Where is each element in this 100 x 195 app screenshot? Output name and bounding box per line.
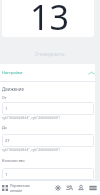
staticText: онлайн bbox=[10, 188, 23, 193]
staticText: 1 bbox=[5, 106, 8, 111]
staticText: Перевозчик bbox=[10, 183, 30, 188]
staticText: rgb("##########", rgb("##########") bbox=[2, 148, 60, 152]
staticText: Количество bbox=[2, 158, 25, 163]
staticText: rgb("##########", rgb("##########") bbox=[2, 116, 60, 120]
button[interactable]: Person bbox=[75, 180, 86, 195]
staticText: До bbox=[2, 125, 7, 130]
button[interactable]: Settings bbox=[52, 180, 63, 195]
button[interactable]: Перевозчик bbox=[0, 183, 33, 193]
button[interactable]: Menu bbox=[86, 180, 99, 195]
button[interactable]: Настройки bbox=[0, 64, 95, 81]
staticText: 1 bbox=[5, 172, 8, 177]
staticText: Движение bbox=[2, 86, 24, 92]
staticText: 13 bbox=[30, 0, 69, 31]
staticText: 27 bbox=[5, 138, 10, 143]
staticText: От bbox=[2, 95, 7, 100]
button[interactable]: Group bbox=[63, 180, 75, 195]
staticText: Настройки bbox=[2, 70, 23, 75]
staticText: Очевидность bbox=[35, 51, 65, 57]
